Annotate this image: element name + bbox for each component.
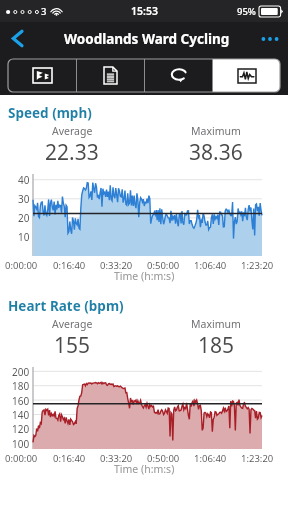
staticText: 0:00:00: [5, 259, 38, 272]
staticText: 0:00:00: [5, 452, 38, 465]
staticText: Maximum: [191, 124, 241, 138]
staticText: 1:23:20: [241, 259, 274, 272]
staticText: 3: [41, 5, 47, 18]
staticText: 200: [12, 365, 30, 379]
staticText: 10: [18, 230, 30, 244]
staticText: 38.36: [189, 138, 243, 167]
staticText: Speed (mph): [8, 104, 92, 122]
staticText: 15:53: [131, 4, 158, 18]
staticText: 0:50:00: [147, 259, 180, 272]
button[interactable]: Map: [8, 59, 76, 92]
staticText: 0:16:40: [53, 452, 86, 465]
button[interactable]: Charts: [213, 59, 280, 92]
staticText: Heart Rate (bpm): [8, 297, 124, 315]
staticText: 0:33:20: [100, 452, 133, 465]
staticText: 140: [12, 408, 30, 422]
staticText: 100: [12, 437, 30, 451]
button[interactable]: Laps: [145, 59, 212, 92]
staticText: 180: [12, 379, 30, 393]
staticText: 185: [198, 331, 235, 360]
staticText: 0:16:40: [53, 259, 86, 272]
staticText: Woodlands Ward Cycling: [64, 30, 230, 48]
staticText: 0:50:00: [147, 452, 180, 465]
staticText: 1:06:40: [194, 452, 227, 465]
staticText: 30: [18, 192, 30, 206]
button[interactable]: Back: [0, 22, 34, 55]
staticText: 95%: [237, 5, 256, 18]
button[interactable]: More options: [252, 22, 288, 55]
staticText: 40: [18, 173, 30, 187]
staticText: Maximum: [191, 317, 241, 331]
staticText: 1:23:20: [241, 452, 274, 465]
staticText: Time (h:m:s): [114, 269, 175, 283]
staticText: Time (h:m:s): [114, 462, 175, 476]
staticText: 20: [18, 211, 30, 225]
staticText: 120: [12, 422, 30, 436]
staticText: 0:33:20: [100, 259, 133, 272]
button[interactable]: Summary: [77, 59, 144, 92]
staticText: 22.33: [45, 138, 99, 167]
staticText: 1:06:40: [194, 259, 227, 272]
staticText: 155: [54, 331, 91, 360]
staticText: Average: [52, 124, 93, 138]
staticText: Average: [52, 317, 93, 331]
staticText: 160: [12, 394, 30, 408]
